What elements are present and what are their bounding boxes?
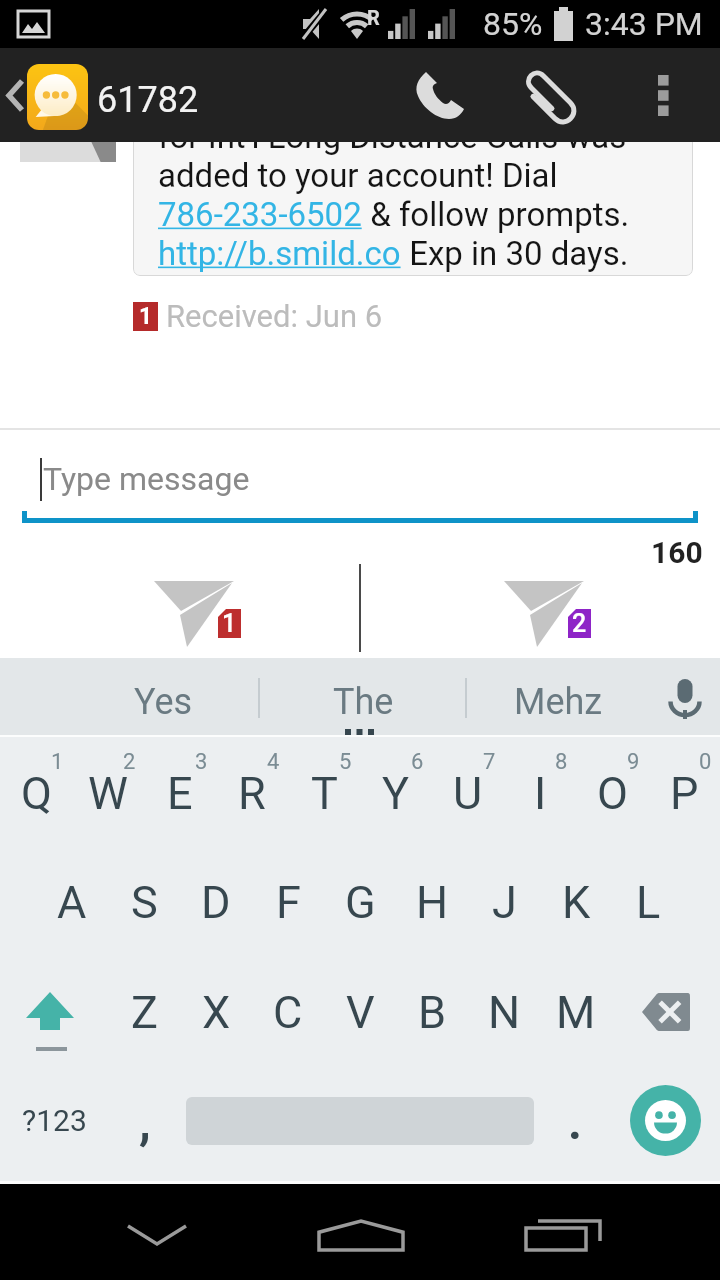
staticText: 61782 bbox=[97, 79, 199, 121]
button[interactable]: Yes bbox=[60, 658, 267, 737]
button[interactable]: C bbox=[252, 957, 324, 1067]
staticText: ?123 bbox=[22, 1103, 87, 1138]
staticText: 5 bbox=[339, 749, 352, 775]
staticText: 7 bbox=[483, 749, 496, 775]
button[interactable]: Voice input bbox=[649, 658, 720, 737]
staticText: 1 bbox=[139, 303, 153, 330]
staticText: 2 bbox=[123, 749, 136, 775]
staticText: . bbox=[568, 1094, 582, 1150]
staticText: R bbox=[367, 6, 380, 29]
staticText: 3:43 PM bbox=[585, 5, 703, 43]
staticText: B bbox=[418, 986, 447, 1039]
staticText: 4 bbox=[267, 749, 280, 775]
staticText: 3 bbox=[195, 749, 208, 775]
staticText: 8 bbox=[555, 749, 568, 775]
button[interactable]: E bbox=[144, 737, 216, 847]
button[interactable]: Back bbox=[0, 48, 28, 142]
staticText: K bbox=[562, 876, 591, 929]
button[interactable]: U bbox=[432, 737, 504, 847]
button[interactable]: N bbox=[468, 957, 540, 1067]
button[interactable]: R bbox=[216, 737, 288, 847]
button[interactable]: P bbox=[648, 737, 720, 847]
button[interactable]: ?123 bbox=[0, 1067, 108, 1177]
staticText: M bbox=[556, 986, 596, 1039]
staticText: 6 bbox=[411, 749, 424, 775]
button[interactable]: W bbox=[72, 737, 144, 847]
button[interactable]: Send with SIM 1 bbox=[104, 568, 294, 658]
button[interactable]: The bbox=[260, 658, 466, 737]
button[interactable]: More options bbox=[630, 48, 696, 142]
staticText: J bbox=[492, 876, 517, 929]
button[interactable]: , bbox=[108, 1067, 186, 1177]
button[interactable]: Attach bbox=[516, 53, 588, 147]
button[interactable]: O bbox=[576, 737, 648, 847]
staticText: added to your account! Dial bbox=[158, 156, 558, 195]
staticText: 9 bbox=[627, 749, 640, 775]
button[interactable]: Z bbox=[108, 957, 180, 1067]
staticText: I bbox=[534, 767, 547, 820]
button[interactable]: Emoji bbox=[630, 1085, 701, 1156]
button[interactable]: X bbox=[180, 957, 252, 1067]
button[interactable]: . bbox=[534, 1067, 612, 1177]
staticText: & follow prompts. bbox=[362, 195, 630, 234]
button[interactable]: F bbox=[252, 847, 324, 957]
button[interactable]: S bbox=[108, 847, 180, 957]
button[interactable]: J bbox=[468, 847, 540, 957]
staticText: http://b.smild.co bbox=[158, 234, 401, 273]
staticText: 786-233-6502 bbox=[158, 195, 362, 234]
staticText: A bbox=[57, 876, 87, 929]
staticText: E bbox=[167, 767, 193, 820]
staticText: 0 bbox=[699, 749, 712, 775]
button[interactable]: B bbox=[396, 957, 468, 1067]
button[interactable]: T bbox=[288, 737, 360, 847]
staticText: 1 bbox=[51, 749, 64, 775]
staticText: U bbox=[453, 767, 483, 820]
staticText: D bbox=[201, 876, 231, 929]
button[interactable]: Call bbox=[404, 48, 476, 142]
staticText: O bbox=[597, 767, 628, 820]
button[interactable]: M bbox=[540, 957, 612, 1067]
button[interactable]: V bbox=[324, 957, 396, 1067]
button[interactable]: G bbox=[324, 847, 396, 957]
staticText: V bbox=[346, 986, 375, 1039]
button[interactable]: Y bbox=[360, 737, 432, 847]
button[interactable]: Send with SIM 2 bbox=[454, 568, 644, 658]
staticText: Received: Jun 6 bbox=[166, 298, 383, 334]
staticText: 85% bbox=[483, 5, 543, 43]
staticText: Z bbox=[131, 986, 158, 1039]
staticText: The bbox=[333, 681, 394, 723]
button[interactable]: H bbox=[396, 847, 468, 957]
button[interactable]: I bbox=[504, 737, 576, 847]
button[interactable]: Backspace bbox=[612, 957, 720, 1067]
button[interactable]: Recents bbox=[520, 1190, 606, 1280]
staticText: Type message bbox=[43, 460, 250, 498]
staticText: Yes bbox=[134, 681, 193, 723]
staticText: W bbox=[88, 767, 128, 820]
staticText: Y bbox=[382, 767, 410, 820]
button[interactable]: Mehz bbox=[467, 658, 649, 737]
staticText: R bbox=[238, 767, 266, 820]
staticText: S bbox=[131, 876, 158, 929]
staticText: , bbox=[139, 1094, 151, 1150]
staticText: 1 bbox=[222, 609, 237, 638]
button[interactable]: L bbox=[612, 847, 684, 957]
staticText: Mehz bbox=[514, 681, 603, 723]
staticText: P bbox=[670, 767, 699, 820]
staticText: 2 bbox=[572, 609, 587, 638]
staticText: L bbox=[636, 876, 661, 929]
button[interactable]: Home bbox=[316, 1190, 406, 1280]
staticText: 160 bbox=[651, 535, 703, 570]
button[interactable]: D bbox=[180, 847, 252, 957]
button[interactable]: K bbox=[540, 847, 612, 957]
button[interactable]: for Int'l Long Distance Calls was bbox=[133, 110, 693, 276]
staticText: Q bbox=[21, 767, 52, 820]
staticText: F bbox=[276, 876, 301, 929]
staticText: Exp in 30 days. bbox=[401, 234, 629, 273]
button[interactable]: A bbox=[36, 847, 108, 957]
button[interactable]: Q bbox=[0, 737, 72, 847]
button[interactable]: Back bbox=[96, 1190, 218, 1280]
staticText: C bbox=[273, 986, 303, 1039]
staticText: G bbox=[345, 876, 376, 929]
button[interactable]: Shift bbox=[0, 957, 108, 1067]
